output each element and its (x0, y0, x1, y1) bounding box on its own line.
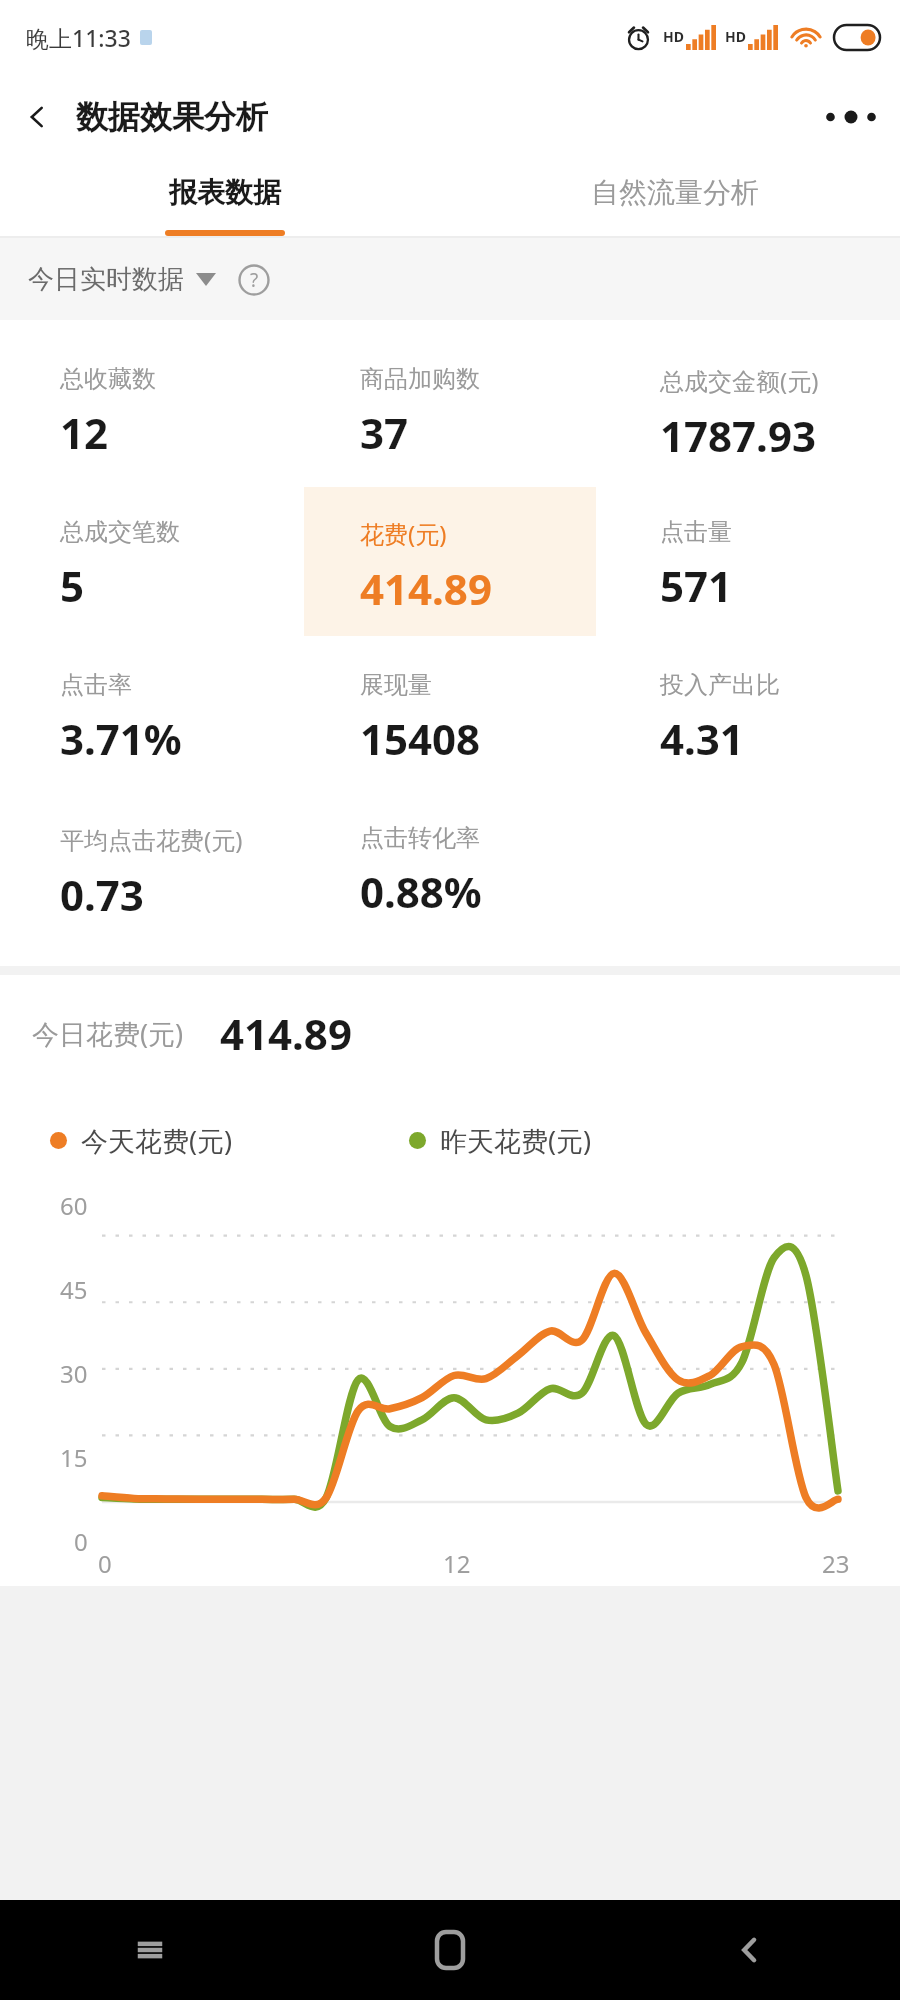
staticText: 23 (822, 1547, 850, 1580)
button[interactable]: 自然流量分析 (450, 160, 900, 236)
staticText: 0.73 (60, 866, 144, 923)
staticText: 60 (60, 1189, 88, 1222)
staticText: 12 (60, 404, 109, 461)
button[interactable]: Menu (0, 1900, 300, 2000)
staticText: HD (725, 27, 746, 46)
button[interactable]: Back (0, 90, 64, 144)
staticText: 花费(元) (360, 517, 447, 550)
staticText: 3.71% (60, 710, 182, 767)
staticText: 今天花费(元) (81, 1122, 233, 1159)
staticText: 平均点击花费(元) (60, 823, 243, 856)
staticText: 15408 (360, 710, 481, 767)
staticText: 数据效果分析 (76, 97, 268, 137)
button[interactable]: Help (238, 264, 270, 296)
staticText: 1787.93 (660, 407, 816, 464)
staticText: 45 (60, 1273, 88, 1306)
button[interactable]: 点击率 (4, 640, 296, 789)
staticText: 12 (443, 1547, 471, 1580)
button[interactable]: 总成交笔数 (4, 487, 296, 636)
staticText: 点击率 (60, 670, 132, 700)
staticText: 0 (98, 1547, 112, 1580)
staticText: 今日实时数据 (28, 263, 184, 296)
button[interactable]: 展现量 (304, 640, 596, 789)
staticText: 自然流量分析 (591, 175, 759, 210)
staticText: 点击量 (660, 517, 732, 547)
staticText: 今日花费(元) (32, 1015, 184, 1052)
button[interactable]: 投入产出比 (604, 640, 896, 789)
button[interactable]: 总收藏数 (4, 334, 296, 483)
button[interactable]: 点击量 (604, 487, 896, 636)
button[interactable]: Back (600, 1900, 900, 2000)
button[interactable]: 报表数据 (0, 160, 450, 236)
button[interactable]: 点击转化率 (304, 793, 596, 942)
staticText: 571 (660, 557, 733, 614)
button[interactable]: 平均点击花费(元) (4, 793, 296, 942)
staticText: 5 (60, 557, 85, 614)
staticText: 414.89 (220, 1005, 352, 1062)
staticText: 投入产出比 (660, 670, 780, 700)
button[interactable]: 今日实时数据 (26, 255, 218, 304)
button[interactable]: 总成交金额(元) (604, 334, 896, 483)
staticText: 总收藏数 (60, 364, 156, 394)
staticText: 总成交金额(元) (660, 364, 819, 397)
button[interactable]: 商品加购数 (304, 334, 596, 483)
staticText: 0.88% (360, 863, 482, 920)
staticText: 30 (60, 1357, 88, 1390)
button[interactable]: Home (300, 1900, 600, 2000)
staticText: 15 (60, 1441, 88, 1474)
button[interactable]: More options (802, 90, 900, 144)
staticText: 晚上11:33 (26, 22, 131, 53)
staticText: ? (250, 267, 259, 293)
staticText: 37 (360, 404, 409, 461)
staticText: 414.89 (360, 560, 492, 617)
staticText: 点击转化率 (360, 823, 480, 853)
staticText: 0 (74, 1525, 88, 1558)
staticText: 昨天花费(元) (440, 1122, 592, 1159)
staticText: 展现量 (360, 670, 432, 700)
button[interactable]: 花费(元) (304, 487, 596, 636)
staticText: HD (663, 27, 684, 46)
staticText: 4.31 (660, 710, 744, 767)
staticText: 总成交笔数 (60, 517, 180, 547)
staticText: 商品加购数 (360, 364, 480, 394)
staticText: 报表数据 (169, 175, 281, 210)
